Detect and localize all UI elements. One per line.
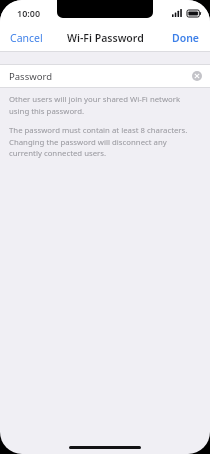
button[interactable]: Clear text [191, 70, 203, 82]
staticText: The password must contain at least 8 cha… [9, 125, 198, 158]
button[interactable]: Password [0, 64, 210, 88]
staticText: Wi-Fi Password [67, 31, 144, 45]
button[interactable]: Done [162, 26, 210, 50]
staticText: Other users will join your shared Wi-Fi … [9, 94, 198, 116]
button[interactable]: Cancel [0, 26, 53, 50]
staticText: Cancel [10, 31, 43, 45]
staticText: Done [172, 31, 200, 45]
staticText: 10:00 [17, 7, 41, 19]
staticText: Password [9, 70, 52, 83]
